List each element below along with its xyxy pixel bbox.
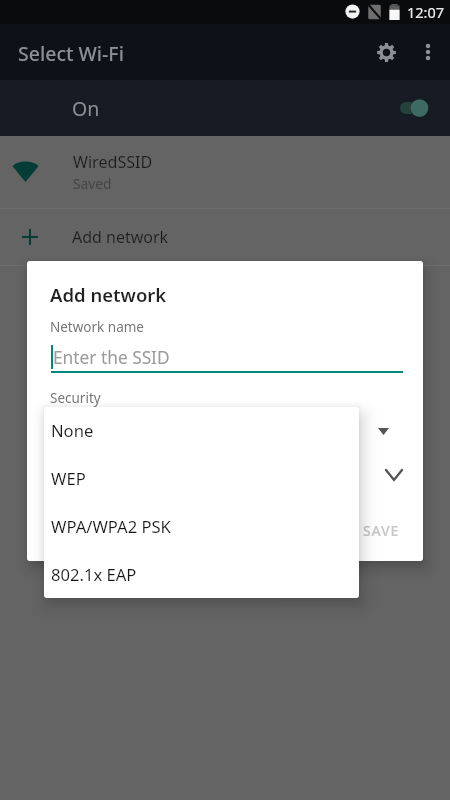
button[interactable]: WiredSSID [0, 136, 450, 208]
staticText: On [72, 95, 100, 122]
staticText: Saved [73, 174, 112, 193]
button[interactable]: SAVE [351, 512, 411, 548]
button[interactable]: Add network [0, 209, 450, 265]
button[interactable]: More options [408, 32, 448, 72]
staticText: Enter the SSID [53, 346, 170, 370]
staticText: Network name [50, 318, 144, 336]
button[interactable]: Settings [364, 30, 408, 74]
staticText: Add network [72, 226, 169, 248]
staticText: Add network [50, 282, 167, 307]
staticText: 12:07 [407, 2, 445, 22]
button[interactable]: 802.1x EAP [44, 550, 359, 598]
staticText: WiredSSID [73, 151, 153, 173]
button[interactable]: WPA/WPA2 PSK [44, 502, 359, 550]
staticText: WPA/WPA2 PSK [51, 515, 171, 538]
staticText: Security [50, 389, 101, 407]
staticText: WEP [51, 467, 86, 490]
staticText: None [51, 419, 94, 442]
staticText: 802.1x EAP [51, 563, 137, 586]
button[interactable]: On [0, 80, 450, 136]
staticText: SAVE [363, 521, 400, 540]
button[interactable]: None [44, 407, 359, 454]
staticText: Select Wi-Fi [18, 40, 124, 67]
button[interactable]: WEP [44, 454, 359, 502]
